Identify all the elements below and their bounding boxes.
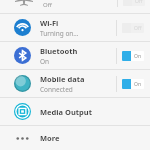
button[interactable]: Media Output: [0, 98, 150, 125]
staticText: Turning on...: [40, 29, 79, 38]
staticText: Media Output: [40, 107, 92, 117]
button[interactable]: Toggle off: [116, 14, 144, 41]
staticText: Wi-Fi: [40, 18, 59, 28]
staticText: Off: [135, 0, 143, 5]
staticText: More: [40, 133, 60, 143]
button[interactable]: Toggle on: [116, 70, 144, 97]
staticText: On: [40, 57, 50, 66]
button[interactable]: Wi-Fi: [0, 14, 150, 41]
staticText: Off: [43, 1, 52, 9]
staticText: On: [134, 53, 141, 60]
button[interactable]: Mobile data: [0, 70, 150, 97]
button[interactable]: Toggle on: [116, 42, 144, 69]
button[interactable]: Airplane mode: [0, 0, 150, 13]
staticText: Mobile data: [40, 74, 85, 84]
button[interactable]: More: [0, 126, 150, 150]
staticText: Connected: [40, 85, 73, 94]
other: Airplane mode: [14, 0, 34, 6]
staticText: On: [134, 81, 141, 88]
button[interactable]: Toggle off: [117, 0, 145, 7]
staticText: Off: [134, 25, 142, 32]
staticText: Bluetooth: [40, 46, 78, 56]
button[interactable]: Bluetooth: [0, 42, 150, 69]
